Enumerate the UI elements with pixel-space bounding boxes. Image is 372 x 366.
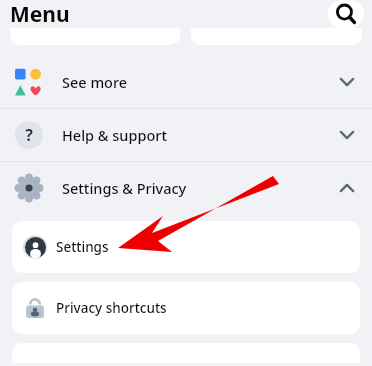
button[interactable]: Search xyxy=(328,0,364,28)
staticText: Settings xyxy=(56,238,109,256)
button[interactable]: Settings & Privacy xyxy=(0,162,372,214)
staticText: Privacy shortcuts xyxy=(56,299,167,317)
staticText: Help & support xyxy=(62,125,336,145)
button[interactable]: Settings xyxy=(12,221,360,273)
staticText: Menu xyxy=(10,0,70,28)
staticText: Settings & Privacy xyxy=(62,178,336,198)
staticText: See more xyxy=(62,72,336,92)
button[interactable]: See more xyxy=(0,56,372,108)
button[interactable]: Privacy shortcuts xyxy=(12,282,360,334)
button[interactable]: ? xyxy=(0,109,372,161)
staticText: ? xyxy=(25,124,33,146)
